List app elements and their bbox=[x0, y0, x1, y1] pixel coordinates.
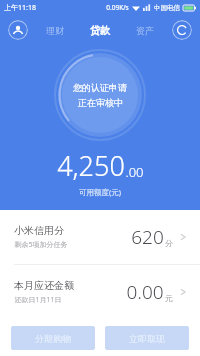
button[interactable]: 理财 bbox=[43, 23, 67, 38]
staticText: 上午11:18 bbox=[4, 3, 36, 13]
staticText: 理财 bbox=[46, 25, 64, 36]
staticText: 中国电信 bbox=[154, 4, 180, 12]
staticText: 本月应还金额 bbox=[14, 279, 74, 292]
staticText: 剩余5项加分任务 bbox=[14, 240, 68, 250]
staticText: 您的认证申请 bbox=[73, 82, 127, 93]
staticText: 分期购物 bbox=[35, 333, 71, 344]
staticText: 立即取现 bbox=[129, 333, 165, 344]
button[interactable]: 立即取现 bbox=[105, 326, 189, 350]
button[interactable]: Profile bbox=[8, 20, 28, 40]
button[interactable]: Service bbox=[172, 20, 192, 40]
staticText: .00 bbox=[125, 163, 144, 181]
staticText: 正在审核中 bbox=[78, 97, 123, 108]
button[interactable]: 贷款 bbox=[87, 22, 113, 39]
staticText: 小米信用分 bbox=[14, 224, 64, 237]
staticText: 0.00 bbox=[126, 279, 164, 305]
button[interactable]: 小米信用分 bbox=[0, 210, 200, 264]
button[interactable]: 本月应还金额 bbox=[0, 265, 200, 319]
staticText: 4,250 bbox=[57, 147, 125, 184]
staticText: 资产 bbox=[136, 25, 154, 36]
staticText: 可用额度(元) bbox=[79, 187, 121, 197]
staticText: 还款日1月11日 bbox=[14, 295, 62, 305]
staticText: 620 bbox=[131, 224, 164, 250]
staticText: 分 bbox=[165, 238, 173, 248]
staticText: 贷款 bbox=[90, 24, 110, 37]
button[interactable]: 资产 bbox=[133, 23, 157, 38]
staticText: 元 bbox=[165, 293, 173, 303]
button[interactable]: 分期购物 bbox=[11, 326, 95, 350]
staticText: 0.09K/s bbox=[106, 3, 129, 12]
